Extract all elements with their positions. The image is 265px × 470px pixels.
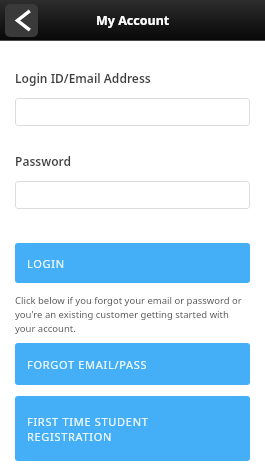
staticText: FORGOT EMAIL/PASS (27, 357, 148, 372)
button[interactable]: FIRST TIME STUDENT (15, 396, 250, 461)
staticText: My Account (96, 12, 170, 29)
staticText: FIRST TIME STUDENT (27, 414, 149, 429)
button[interactable]: LOGIN (15, 243, 250, 283)
staticText: Login ID/Email Address (15, 70, 151, 86)
button[interactable] (15, 98, 250, 126)
staticText: Click below if you forgot your email or … (15, 294, 250, 335)
button[interactable]: Back (5, 4, 38, 37)
staticText: LOGIN (27, 256, 65, 271)
staticText: Password (15, 153, 72, 169)
button[interactable] (15, 181, 250, 209)
button[interactable]: FORGOT EMAIL/PASS (15, 343, 250, 385)
staticText: REGISTRATION (27, 429, 113, 444)
